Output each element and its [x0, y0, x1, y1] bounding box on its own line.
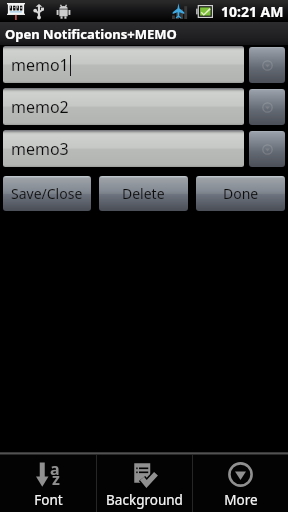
button[interactable]: memo3 [3, 130, 244, 167]
staticText: memo3 [11, 138, 69, 160]
button[interactable]: Done [196, 176, 285, 211]
button[interactable]: Background [97, 455, 192, 512]
staticText: Open Notifications+MEMO [5, 25, 177, 43]
button[interactable]: memo1 [3, 46, 244, 83]
staticText: memo1 [11, 54, 69, 76]
button[interactable]: Save/Close [3, 176, 91, 211]
button[interactable]: memo2 [3, 88, 244, 125]
staticText: memo2 [11, 96, 69, 118]
staticText: a [50, 458, 60, 480]
button[interactable]: Select memo [249, 131, 285, 167]
button[interactable]: Delete [99, 176, 188, 211]
staticText: z [52, 468, 60, 490]
button[interactable]: a [0, 455, 96, 512]
staticText: Font [34, 491, 63, 509]
button[interactable]: Select memo [249, 89, 285, 125]
staticText: Done [223, 184, 259, 203]
staticText: Background [106, 491, 183, 509]
staticText: 10:21 AM [221, 2, 284, 21]
staticText: More [224, 491, 258, 509]
staticText: Delete [122, 184, 165, 203]
button[interactable]: More [193, 455, 288, 512]
button[interactable]: Select memo [249, 47, 285, 83]
staticText: Save/Close [11, 184, 83, 203]
